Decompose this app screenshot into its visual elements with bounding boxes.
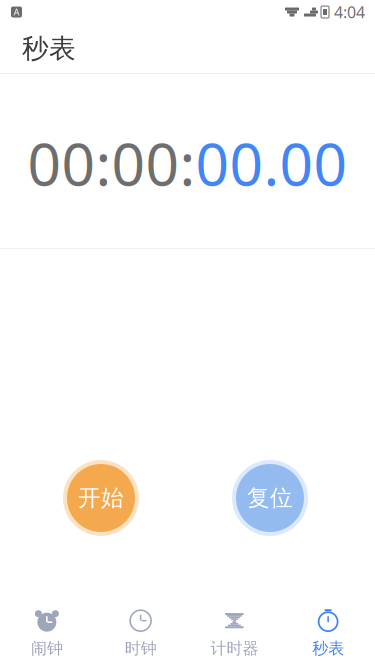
button[interactable]: 秒表 bbox=[281, 600, 375, 666]
staticText: A bbox=[13, 6, 19, 18]
staticText: 计时器 bbox=[210, 639, 258, 658]
staticText: 秒表 bbox=[22, 32, 76, 65]
staticText: 4:04 bbox=[334, 1, 365, 23]
button[interactable]: 闹钟 bbox=[0, 600, 94, 666]
button[interactable]: 计时器 bbox=[187, 600, 281, 666]
button[interactable]: 复位 bbox=[232, 460, 308, 536]
staticText: 时钟 bbox=[125, 639, 157, 658]
staticText: 开始 bbox=[78, 484, 124, 512]
staticText: 秒表 bbox=[312, 639, 344, 658]
button[interactable]: 开始 bbox=[63, 460, 139, 536]
staticText: 复位 bbox=[247, 484, 293, 512]
staticText: 00.00 bbox=[195, 124, 347, 202]
staticText: 00:00: bbox=[27, 124, 195, 202]
staticText: 闹钟 bbox=[31, 639, 63, 658]
button[interactable]: 时钟 bbox=[94, 600, 188, 666]
